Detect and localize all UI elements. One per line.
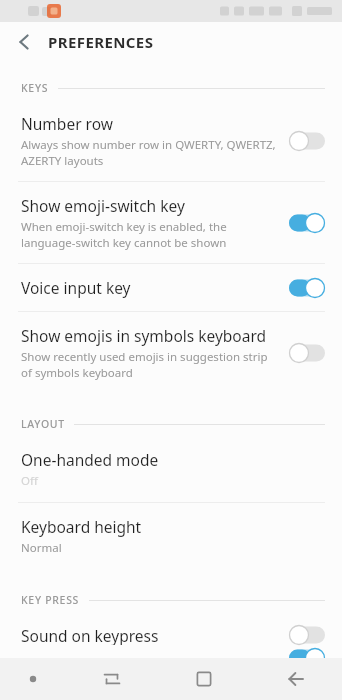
staticText: Show emojis in symbols keyboard (21, 325, 267, 346)
button[interactable]: On (285, 273, 329, 303)
button[interactable]: Off (285, 338, 329, 368)
staticText: Normal (21, 540, 62, 556)
button[interactable]: Keyboard height (0, 503, 342, 569)
staticText: Voice input key (21, 277, 131, 298)
staticText: One-handed mode (21, 449, 159, 470)
button[interactable]: Hide navigation bar (0, 658, 66, 700)
staticText: Off (21, 473, 38, 489)
staticText: KEYS (21, 81, 49, 95)
button[interactable]: Sound on keypress (0, 612, 342, 658)
staticText: When emoji-switch key is enabled, the la… (21, 219, 227, 250)
button[interactable]: Back (250, 658, 342, 700)
staticText: LAYOUT (21, 417, 65, 431)
button[interactable]: Navigate up (8, 27, 38, 57)
button[interactable]: One-handed mode (0, 436, 342, 502)
staticText: KEY PRESS (21, 593, 80, 607)
staticText: Sound on keypress (21, 625, 159, 645)
button[interactable]: Number row (0, 100, 342, 181)
button[interactable]: Show emoji-switch key (0, 182, 342, 263)
staticText: Keyboard height (21, 516, 142, 537)
staticText: PREFERENCES (48, 32, 154, 52)
button[interactable]: Home (158, 658, 250, 700)
button[interactable]: Show emojis in symbols keyboard (0, 312, 342, 393)
staticText: Show emoji-switch key (21, 195, 185, 216)
button[interactable]: Off (285, 620, 329, 650)
staticText: Number row (21, 113, 113, 134)
staticText: Show recently used emojis in suggestion … (21, 349, 268, 380)
button[interactable]: Voice input key (0, 264, 342, 311)
button[interactable]: On (285, 208, 329, 238)
button[interactable]: Recents (66, 658, 158, 700)
staticText: Always show number row in QWERTY, QWERTZ… (21, 137, 276, 168)
button[interactable]: Off (285, 126, 329, 156)
